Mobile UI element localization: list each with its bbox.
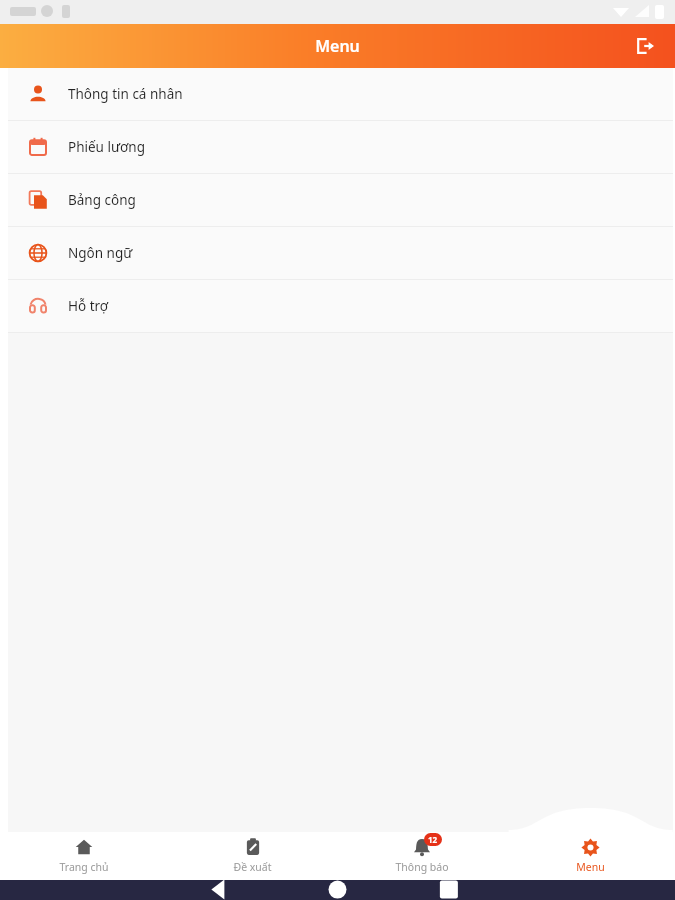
staticText: Ngôn ngữ xyxy=(68,244,133,262)
staticText: 12 xyxy=(428,834,438,845)
button[interactable]: Trang chủ xyxy=(0,832,168,880)
button[interactable]: Đề xuất xyxy=(168,832,337,880)
button[interactable]: Hỗ trợ xyxy=(8,280,673,332)
button[interactable]: Menu xyxy=(506,832,675,880)
staticText: Trang chủ xyxy=(59,860,109,874)
button[interactable]: 12 xyxy=(337,832,506,880)
staticText: Phiếu lương xyxy=(68,138,146,156)
button[interactable]: Phiếu lương xyxy=(8,121,673,173)
staticText: Thông báo xyxy=(395,860,449,874)
staticText: Bảng công xyxy=(68,191,136,209)
staticText: Menu xyxy=(576,860,605,874)
button[interactable]: Ngôn ngữ xyxy=(8,227,673,279)
staticText: Đề xuất xyxy=(233,860,272,874)
button[interactable]: Thông tin cá nhân xyxy=(8,68,673,120)
staticText: Hỗ trợ xyxy=(68,297,109,315)
button[interactable]: Bảng công xyxy=(8,174,673,226)
button[interactable]: Logout xyxy=(627,28,663,64)
staticText: Thông tin cá nhân xyxy=(68,85,183,103)
staticText: Menu xyxy=(315,35,360,57)
